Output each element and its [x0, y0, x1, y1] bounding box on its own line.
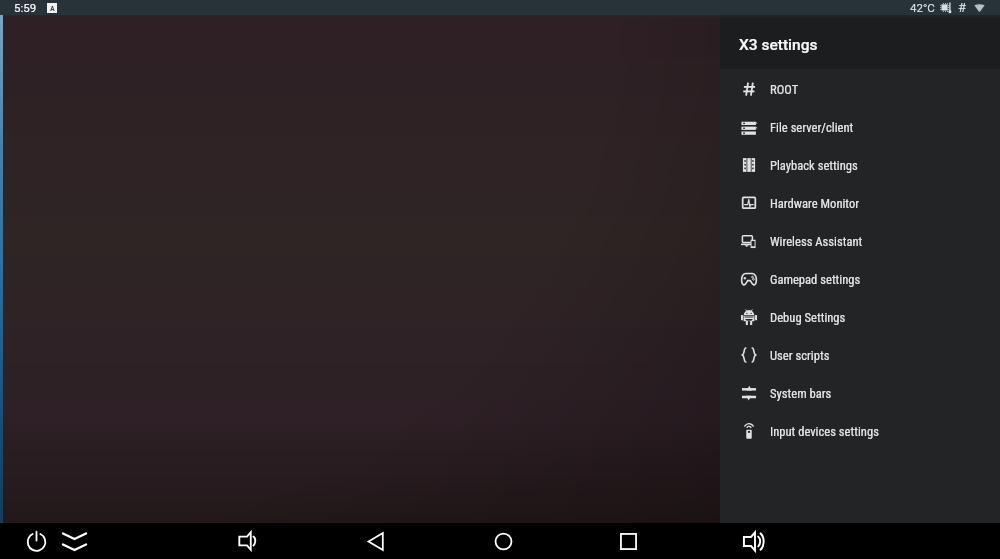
button[interactable]: Volume up: [736, 523, 772, 559]
staticText: ROOT: [770, 82, 799, 97]
button[interactable]: Debug Settings: [720, 298, 1000, 336]
button[interactable]: Wireless Assistant: [720, 222, 1000, 260]
button[interactable]: File server/client: [720, 108, 1000, 146]
staticText: 5:59: [14, 1, 37, 14]
button[interactable]: Gamepad settings: [720, 260, 1000, 298]
button[interactable]: User scripts: [720, 336, 1000, 374]
staticText: Hardware Monitor: [770, 196, 860, 211]
button[interactable]: Back: [358, 523, 394, 559]
button[interactable]: Expand menu: [56, 525, 92, 559]
button[interactable]: ROOT: [720, 70, 1000, 108]
staticText: File server/client: [770, 120, 854, 135]
staticText: Gamepad settings: [770, 272, 861, 287]
staticText: Playback settings: [770, 158, 858, 173]
button[interactable]: Power: [18, 522, 54, 558]
button[interactable]: System bars: [720, 374, 1000, 412]
staticText: User scripts: [770, 348, 830, 363]
button[interactable]: Input devices settings: [720, 412, 1000, 450]
staticText: X3 settings: [739, 36, 818, 54]
staticText: A: [50, 4, 55, 13]
staticText: System bars: [770, 386, 832, 401]
staticText: #: [958, 0, 967, 15]
button[interactable]: Volume down: [231, 523, 267, 559]
staticText: Input devices settings: [770, 424, 879, 439]
button[interactable]: Hardware Monitor: [720, 184, 1000, 222]
button[interactable]: Playback settings: [720, 146, 1000, 184]
button[interactable]: Recent apps: [610, 523, 646, 559]
button[interactable]: Home: [485, 523, 521, 559]
staticText: Wireless Assistant: [770, 234, 863, 249]
staticText: Debug Settings: [770, 310, 846, 325]
staticText: 42°C: [910, 1, 935, 14]
